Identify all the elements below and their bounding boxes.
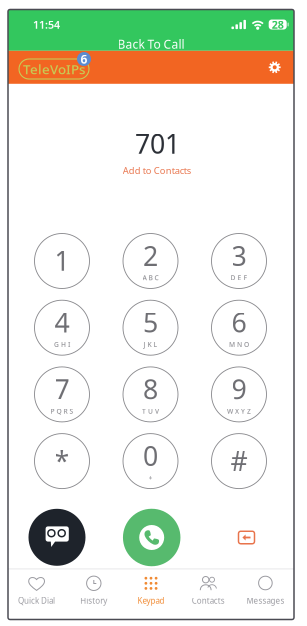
staticText: 5 (143, 305, 158, 340)
button[interactable]: Messages (237, 569, 294, 619)
button[interactable]: 0 (123, 434, 178, 489)
button[interactable]: 2 (123, 233, 178, 288)
button[interactable]: TeleVoIPs (19, 52, 103, 79)
staticText: Quick Dial (18, 595, 55, 606)
staticText: Keypad (137, 595, 164, 606)
staticText: Back To Call (117, 36, 184, 52)
button[interactable]: * (34, 434, 89, 489)
staticText: P Q R S (50, 407, 73, 416)
staticText: Messages (246, 595, 284, 606)
staticText: 9 (231, 371, 246, 407)
staticText: J K L (143, 340, 157, 349)
button[interactable]: # (211, 434, 266, 489)
staticText: * (54, 443, 69, 478)
staticText: 0 (143, 438, 158, 473)
button[interactable]: 8 (123, 367, 178, 422)
staticText: 6 (231, 305, 246, 340)
staticText: T U V (142, 407, 159, 416)
staticText: + (148, 473, 152, 482)
staticText: 3 (231, 238, 246, 273)
button[interactable]: Keypad (122, 569, 180, 619)
button[interactable]: 5 (123, 300, 178, 355)
button[interactable]: Back To Call (8, 37, 294, 52)
staticText: 2 (143, 238, 158, 273)
staticText: 8 (143, 371, 158, 407)
staticText: M N O (229, 340, 249, 349)
staticText: TeleVoIPs (23, 60, 85, 78)
button[interactable]: 3 (211, 233, 266, 288)
staticText: 1 (54, 243, 69, 278)
button[interactable]: History (65, 569, 122, 619)
staticText: 28 (272, 17, 284, 32)
staticText: # (230, 443, 247, 478)
staticText: History (80, 595, 107, 606)
button[interactable]: 4 (34, 300, 89, 355)
button[interactable]: Contacts (180, 569, 237, 619)
button[interactable]: Delete (222, 513, 270, 561)
button[interactable]: 9 (211, 367, 266, 422)
button[interactable]: Settings (269, 61, 281, 73)
staticText: 11:54 (33, 17, 60, 32)
button[interactable]: Voicemail (28, 509, 85, 566)
staticText: Contacts (192, 595, 225, 606)
staticText: Add to Contacts (123, 164, 191, 177)
staticText: 4 (54, 305, 69, 340)
staticText: 7 (54, 371, 69, 407)
staticText: 701 (135, 126, 180, 161)
button[interactable]: 1 (34, 233, 89, 288)
staticText: D E F (230, 273, 247, 282)
staticText: A B C (142, 273, 158, 282)
button[interactable]: 6 (211, 300, 266, 355)
staticText: G H I (54, 340, 70, 349)
button[interactable]: Call (123, 509, 180, 566)
staticText: W X Y Z (227, 407, 251, 416)
button[interactable]: Quick Dial (8, 569, 65, 619)
button[interactable]: 7 (34, 367, 89, 422)
staticText: 6 (80, 51, 87, 67)
button[interactable]: Add to Contacts (120, 161, 194, 180)
